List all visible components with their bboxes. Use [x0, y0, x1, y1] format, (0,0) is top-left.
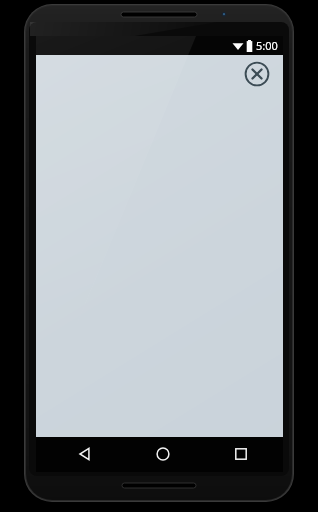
button[interactable]: Home — [124, 437, 202, 471]
staticText: 5:00 — [256, 38, 278, 53]
button[interactable]: Back — [46, 437, 124, 471]
button[interactable]: Recent apps — [202, 437, 280, 471]
button[interactable]: Close — [242, 59, 272, 89]
